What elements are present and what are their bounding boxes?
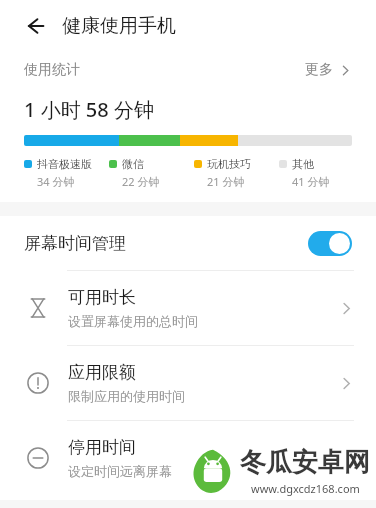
button[interactable]: 应用限额	[0, 346, 376, 420]
staticText: 应用限额	[68, 362, 136, 383]
staticText: 41 分钟	[292, 174, 330, 189]
button[interactable]: 可用时长	[0, 271, 376, 345]
button[interactable]: 使用统计	[0, 52, 376, 88]
staticText: 健康使用手机	[62, 14, 176, 38]
staticText: 设置屏幕使用的总时间	[68, 313, 198, 329]
staticText: 34 分钟	[37, 174, 75, 189]
staticText: 冬瓜安卓网	[240, 446, 370, 479]
staticText: 更多	[305, 61, 333, 79]
button[interactable]: 屏幕时间管理	[0, 216, 376, 270]
button[interactable]: Back	[18, 9, 52, 43]
staticText: 设定时间远离屏幕	[68, 463, 172, 479]
staticText: 22 分钟	[122, 174, 160, 189]
staticText: 使用统计	[24, 61, 80, 79]
button[interactable]: 停用时间	[0, 421, 376, 495]
staticText: 微信	[122, 157, 144, 171]
staticText: 限制应用的使用时间	[68, 388, 185, 404]
staticText: 停用时间	[68, 437, 136, 458]
staticText: 其他	[292, 157, 314, 171]
staticText: www.dgxcdz168.com	[251, 481, 360, 496]
staticText: 抖音极速版	[37, 157, 92, 171]
staticText: 玩机技巧	[207, 157, 251, 171]
staticText: 屏幕时间管理	[24, 233, 126, 254]
staticText: 21 分钟	[207, 174, 245, 189]
staticText: 1 小时 58 分钟	[24, 96, 154, 123]
button[interactable]: Screen time management toggle	[308, 231, 352, 256]
staticText: 可用时长	[68, 287, 136, 308]
